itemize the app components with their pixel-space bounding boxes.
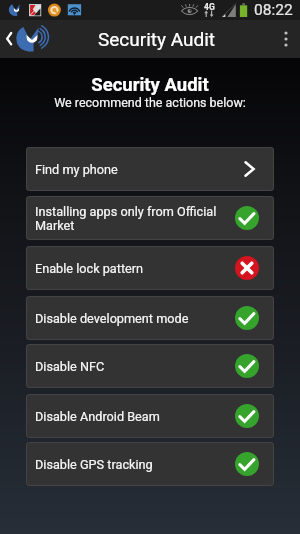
staticText: Disable Android Beam: [35, 409, 229, 424]
staticText: Disable development mode: [35, 311, 229, 326]
staticText: Disable GPS tracking: [35, 457, 229, 472]
button[interactable]: Navigate up: [0, 20, 52, 58]
staticText: 08:22: [254, 1, 293, 19]
button[interactable]: Disable Android Beam: [26, 394, 274, 438]
staticText: 4G: [204, 2, 215, 12]
staticText: Find my phone: [35, 162, 238, 177]
button[interactable]: Disable NFC: [26, 344, 274, 388]
button[interactable]: Disable development mode: [26, 296, 274, 340]
button[interactable]: Disable GPS tracking: [26, 442, 274, 486]
staticText: Enable lock pattern: [35, 261, 229, 276]
button[interactable]: More options: [272, 20, 300, 58]
staticText: Security Audit: [0, 74, 300, 96]
button[interactable]: Find my phone: [26, 147, 274, 191]
button[interactable]: Enable lock pattern: [26, 246, 274, 290]
staticText: Installing apps only from Official Marke…: [35, 204, 229, 233]
staticText: We recommend the actions below:: [0, 95, 300, 110]
staticText: Security Audit: [98, 28, 216, 50]
button[interactable]: Installing apps only from Official Marke…: [26, 196, 274, 240]
staticText: Disable NFC: [35, 359, 229, 374]
